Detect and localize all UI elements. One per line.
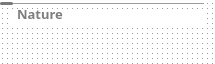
- other: Scroll position: [0, 2, 13, 5]
- staticText: Nature: [17, 5, 63, 23]
